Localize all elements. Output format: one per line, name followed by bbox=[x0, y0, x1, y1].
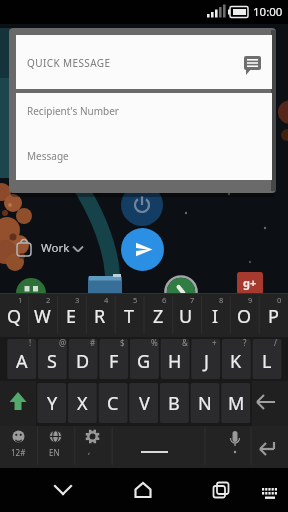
staticText: 10:00 bbox=[253, 4, 283, 20]
button[interactable]: W bbox=[28, 303, 56, 329]
button[interactable]: E bbox=[57, 303, 85, 329]
staticText: QUICK MESSAGE bbox=[27, 56, 111, 70]
button[interactable]: P bbox=[259, 303, 287, 329]
button[interactable]: B bbox=[160, 390, 188, 416]
staticText: W bbox=[34, 304, 51, 329]
staticText: F bbox=[109, 349, 119, 374]
button[interactable]: G bbox=[130, 348, 158, 374]
staticText: E bbox=[66, 304, 77, 329]
staticText: + bbox=[212, 337, 217, 348]
button[interactable]: O bbox=[230, 303, 258, 329]
staticText: 5 bbox=[133, 295, 138, 305]
button[interactable]: Z bbox=[144, 303, 172, 329]
staticText: ! bbox=[29, 337, 32, 348]
staticText: A bbox=[16, 349, 28, 374]
staticText: 6 bbox=[162, 295, 167, 305]
staticText: P bbox=[268, 304, 279, 329]
staticText: G bbox=[137, 349, 151, 374]
staticText: B bbox=[168, 391, 180, 416]
button[interactable]: F bbox=[100, 348, 128, 374]
staticText: 12# bbox=[11, 447, 26, 458]
staticText: V bbox=[139, 391, 150, 416]
staticText: M bbox=[228, 391, 245, 416]
staticText: R bbox=[94, 304, 106, 329]
staticText: & bbox=[182, 337, 188, 348]
staticText: O bbox=[237, 304, 252, 329]
staticText: 9 bbox=[248, 295, 253, 305]
staticText: 8 bbox=[219, 295, 224, 305]
button[interactable]: I bbox=[201, 303, 229, 329]
button[interactable]: R bbox=[86, 303, 114, 329]
staticText: D bbox=[76, 349, 90, 374]
staticText: T bbox=[124, 304, 135, 329]
button[interactable]: X bbox=[68, 390, 96, 416]
staticText: U bbox=[179, 304, 193, 329]
button[interactable] bbox=[16, 35, 272, 89]
button[interactable] bbox=[121, 228, 164, 271]
staticText: EN bbox=[49, 447, 60, 458]
button[interactable] bbox=[258, 482, 282, 506]
button[interactable] bbox=[20, 140, 268, 170]
staticText: L bbox=[262, 349, 272, 374]
button[interactable] bbox=[206, 475, 236, 505]
button[interactable] bbox=[128, 475, 158, 505]
staticText: X bbox=[77, 391, 88, 416]
staticText: 7 bbox=[190, 295, 195, 305]
staticText: N bbox=[198, 391, 212, 416]
staticText: J bbox=[204, 349, 209, 374]
button[interactable]: H bbox=[161, 348, 189, 374]
button[interactable]: J bbox=[192, 348, 220, 374]
button[interactable]: T bbox=[115, 303, 143, 329]
button[interactable]: Q bbox=[0, 303, 28, 329]
staticText: Q bbox=[7, 304, 22, 329]
button[interactable]: S bbox=[38, 348, 66, 374]
staticText: 3 bbox=[75, 295, 80, 305]
staticText: ? bbox=[243, 337, 247, 348]
button[interactable]: U bbox=[172, 303, 200, 329]
button[interactable]: K bbox=[222, 348, 250, 374]
staticText: / bbox=[274, 337, 277, 348]
staticText: % bbox=[151, 337, 158, 348]
button[interactable] bbox=[0, 424, 112, 468]
staticText: 1 bbox=[18, 295, 23, 305]
staticText: $ bbox=[120, 337, 125, 348]
staticText: , bbox=[88, 445, 91, 456]
button[interactable]: N bbox=[191, 390, 219, 416]
staticText: Recipient's Number bbox=[27, 104, 119, 118]
staticText: Message bbox=[27, 149, 69, 163]
button[interactable]: D bbox=[69, 348, 97, 374]
button[interactable]: C bbox=[99, 390, 127, 416]
button[interactable] bbox=[205, 424, 288, 468]
staticText: Y bbox=[47, 391, 58, 416]
button[interactable] bbox=[20, 96, 268, 126]
staticText: S bbox=[47, 349, 57, 374]
button[interactable] bbox=[112, 424, 205, 468]
button[interactable]: A bbox=[8, 348, 36, 374]
staticText: 4 bbox=[104, 295, 109, 305]
staticText: g+ bbox=[243, 275, 257, 290]
staticText: K bbox=[230, 349, 242, 374]
staticText: 0 bbox=[277, 295, 282, 305]
button[interactable]: Y bbox=[38, 390, 66, 416]
staticText: C bbox=[107, 391, 119, 416]
staticText: @ bbox=[59, 337, 67, 348]
staticText: 2 bbox=[46, 295, 51, 305]
staticText: Z bbox=[153, 304, 164, 329]
staticText: H bbox=[168, 349, 182, 374]
staticText: Work bbox=[41, 240, 70, 256]
staticText: I bbox=[212, 304, 219, 329]
button[interactable] bbox=[48, 475, 78, 505]
staticText: # bbox=[90, 337, 96, 348]
button[interactable]: L bbox=[253, 348, 281, 374]
button[interactable]: M bbox=[222, 390, 250, 416]
button[interactable]: V bbox=[130, 390, 158, 416]
